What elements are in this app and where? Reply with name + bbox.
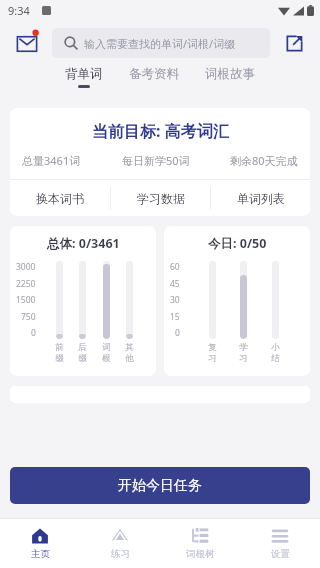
staticText: 9:34 bbox=[8, 3, 30, 18]
button[interactable]: 背单词 bbox=[63, 66, 105, 88]
staticText: 习 bbox=[239, 353, 248, 364]
staticText: 换本词书 bbox=[36, 191, 84, 206]
staticText: 设置 bbox=[271, 548, 290, 560]
button[interactable]: 词根故事 bbox=[203, 66, 257, 85]
staticText: 练习 bbox=[111, 548, 130, 560]
staticText: 结 bbox=[271, 353, 280, 364]
button[interactable]: Messages bbox=[12, 28, 42, 58]
button[interactable]: 词根树 bbox=[160, 519, 240, 568]
staticText: 2250 bbox=[16, 278, 36, 290]
button[interactable]: 换本词书 bbox=[10, 180, 110, 216]
staticText: 复 bbox=[208, 342, 217, 353]
button[interactable]: 练习 bbox=[80, 519, 160, 568]
staticText: 前 bbox=[55, 342, 64, 353]
staticText: 15 bbox=[170, 311, 180, 323]
button[interactable]: 开始今日任务 bbox=[10, 467, 310, 504]
staticText: 每日新学50词 bbox=[122, 153, 190, 168]
button[interactable]: 设置 bbox=[240, 519, 320, 568]
button[interactable]: 主页 bbox=[0, 519, 80, 568]
staticText: 剩余80天完成 bbox=[230, 153, 298, 168]
staticText: 他 bbox=[125, 353, 134, 364]
staticText: 单词列表 bbox=[237, 191, 285, 206]
staticText: 3000 bbox=[16, 261, 36, 273]
staticText: 主页 bbox=[31, 548, 50, 560]
staticText: 后 bbox=[78, 342, 87, 353]
button[interactable]: 输入需要查找的单词/词根/词缀 bbox=[52, 28, 270, 58]
staticText: 学习数据 bbox=[137, 191, 185, 206]
staticText: 词根树 bbox=[186, 548, 215, 560]
staticText: 1500 bbox=[16, 294, 36, 306]
button[interactable]: 单词列表 bbox=[211, 180, 310, 216]
staticText: 60 bbox=[170, 261, 180, 273]
staticText: 其 bbox=[125, 342, 134, 353]
staticText: 0 bbox=[31, 327, 36, 339]
staticText: 词 bbox=[102, 342, 111, 353]
staticText: 开始今日任务 bbox=[118, 477, 202, 495]
staticText: 缀 bbox=[78, 353, 87, 364]
staticText: 根 bbox=[102, 353, 111, 364]
staticText: 750 bbox=[21, 311, 36, 323]
staticText: 当前目标: 高考词汇 bbox=[92, 120, 229, 142]
button[interactable]: 备考资料 bbox=[127, 66, 181, 85]
staticText: 30 bbox=[170, 294, 180, 306]
button[interactable]: Open external bbox=[280, 29, 308, 57]
staticText: 习 bbox=[208, 353, 217, 364]
staticText: 总量3461词 bbox=[22, 153, 81, 168]
staticText: 背单词 bbox=[65, 66, 103, 82]
staticText: 今日: 0/50 bbox=[208, 235, 267, 252]
staticText: 学 bbox=[239, 342, 248, 353]
staticText: 缀 bbox=[55, 353, 64, 364]
staticText: 0 bbox=[175, 327, 180, 339]
staticText: 总体: 0/3461 bbox=[47, 235, 120, 252]
staticText: 词根故事 bbox=[205, 66, 255, 82]
staticText: 45 bbox=[170, 278, 180, 290]
staticText: 小 bbox=[271, 342, 280, 353]
staticText: 输入需要查找的单词/词根/词缀 bbox=[84, 36, 236, 51]
button[interactable]: 学习数据 bbox=[111, 180, 210, 216]
staticText: 备考资料 bbox=[129, 66, 179, 82]
